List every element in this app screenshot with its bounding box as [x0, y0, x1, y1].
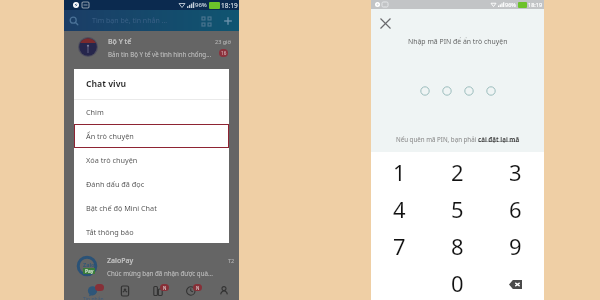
button[interactable]: Danh bạ: [109, 280, 141, 300]
staticText: Nếu quên mã PIN, bạn phải: [396, 135, 478, 143]
button[interactable]: 7: [371, 226, 428, 263]
staticText: Ẩn trò chuyện: [86, 131, 134, 141]
button[interactable]: Backspace: [486, 263, 544, 300]
staticText: 7: [393, 231, 406, 261]
button[interactable]: Cá nhân: [207, 280, 240, 300]
staticText: Bật chế độ Mini Chat: [86, 203, 157, 213]
button[interactable]: Đánh dấu đã đọc: [74, 172, 229, 196]
staticText: ZaloPay: [107, 256, 134, 266]
staticText: 5: [451, 194, 464, 224]
staticText: 3: [509, 157, 522, 187]
staticText: Tắt thông báo: [86, 227, 134, 237]
staticText: Pay: [85, 268, 94, 274]
staticText: Đánh dấu đã đọc: [86, 179, 145, 189]
button[interactable]: 6: [486, 189, 544, 226]
button[interactable]: Tắt thông báo: [74, 220, 229, 243]
staticText: Bản tin Bộ Y tế về tình hình chống...: [108, 50, 212, 58]
button[interactable]: Xóa trò chuyện: [74, 148, 229, 172]
staticText: 16: [221, 50, 227, 56]
staticText: Xóa trò chuyện: [86, 155, 138, 165]
staticText: Chúc mừng bạn đã nhận được quà...: [107, 269, 213, 277]
staticText: 8: [451, 231, 464, 261]
staticText: Chat vivu: [86, 78, 127, 90]
button[interactable]: 0: [428, 263, 486, 300]
staticText: Zalo: [83, 261, 95, 268]
staticText: 2: [451, 157, 464, 187]
other: Backspace: [509, 280, 522, 289]
button[interactable]: Nhật ký: [174, 280, 207, 300]
button[interactable]: 2: [428, 152, 486, 189]
staticText: Tin nhắn: [83, 296, 104, 300]
button[interactable]: 5: [428, 189, 486, 226]
staticText: 9: [509, 231, 522, 261]
staticText: N: [196, 285, 200, 291]
button[interactable]: Tin nhắn: [77, 280, 109, 300]
other: Scan QR: [202, 17, 211, 26]
staticText: Chim: [86, 107, 104, 117]
staticText: 0: [451, 268, 464, 298]
button[interactable]: Khám phá: [141, 280, 174, 300]
other: Add: [222, 15, 234, 27]
staticText: Nhập mã PIN để ẩn trò chuyện: [408, 37, 508, 46]
button[interactable]: Search: [64, 10, 239, 31]
staticText: Tìm bạn bè, tin nhắn ...: [92, 16, 168, 26]
button[interactable]: Bật chế độ Mini Chat: [74, 196, 229, 220]
staticText: 1: [393, 157, 406, 187]
button[interactable]: cài đặt lại mã: [478, 135, 520, 143]
staticText: 4: [393, 194, 406, 224]
staticText: 18:19: [528, 1, 543, 8]
staticText: 6: [509, 194, 522, 224]
staticText: T2: [228, 257, 235, 264]
button[interactable]: Ẩn trò chuyện: [74, 124, 229, 148]
button[interactable]: Bộ Y tế: [78, 35, 231, 59]
button[interactable]: 4: [371, 189, 428, 226]
staticText: 18:19: [221, 1, 238, 10]
button[interactable]: Chim: [74, 100, 229, 124]
staticText: 96%: [505, 1, 516, 8]
button[interactable]: 9: [486, 226, 544, 263]
staticText: N: [163, 285, 167, 291]
button[interactable]: 8: [428, 226, 486, 263]
other: Search: [69, 16, 79, 26]
staticText: Bộ Y tế: [108, 37, 132, 47]
button[interactable]: Close: [376, 14, 394, 32]
button[interactable]: 1: [371, 152, 428, 189]
staticText: 23 giờ: [215, 38, 231, 45]
staticText: 96%: [195, 1, 207, 9]
button[interactable]: Zalo: [77, 253, 232, 279]
button[interactable]: 3: [486, 152, 544, 189]
